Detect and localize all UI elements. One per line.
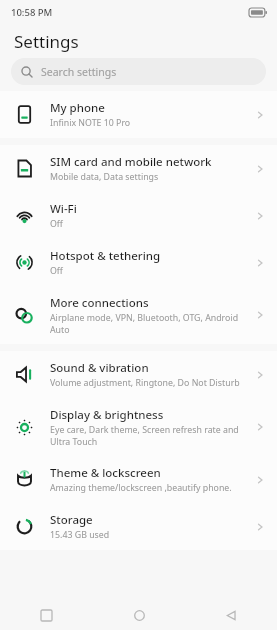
staticText: My phone <box>50 100 105 116</box>
staticText: Search settings <box>41 65 117 79</box>
button[interactable]: Wi-Fi <box>0 192 277 239</box>
button[interactable]: Display & brightness <box>0 398 277 456</box>
staticText: Sound & vibration <box>50 360 149 376</box>
staticText: Theme & lockscreen <box>50 465 161 481</box>
button[interactable]: Sound & vibration <box>0 351 277 398</box>
staticText: Hotspot & tethering <box>50 248 161 264</box>
staticText: More connections <box>50 295 149 311</box>
staticText: Settings <box>14 30 79 53</box>
staticText: Airplane mode, VPN, Bluetooth, OTG, Andr… <box>50 312 248 335</box>
staticText: Wi-Fi <box>50 201 77 217</box>
button[interactable]: Home <box>93 600 185 630</box>
button[interactable]: Hotspot & tethering <box>0 239 277 286</box>
button[interactable]: Theme & lockscreen <box>0 456 277 503</box>
button[interactable]: SIM card and mobile network <box>0 145 277 192</box>
button[interactable]: More connections <box>0 286 277 344</box>
staticText: Infinix NOTE 10 Pro <box>50 117 131 129</box>
staticText: Off <box>50 265 63 277</box>
button[interactable]: Recent apps <box>0 600 93 630</box>
staticText: Mobile data, Data settings <box>50 171 159 183</box>
staticText: 10:58 PM <box>11 6 53 19</box>
staticText: Off <box>50 218 63 230</box>
staticText: Volume adjustment, Ringtone, Do Not Dist… <box>50 377 240 389</box>
staticText: Storage <box>50 512 93 528</box>
button[interactable]: Storage <box>0 503 277 550</box>
staticText: Eye care, Dark theme, Screen refresh rat… <box>50 424 248 447</box>
staticText: 15.43 GB used <box>50 529 110 541</box>
staticText: Display & brightness <box>50 407 164 423</box>
staticText: SIM card and mobile network <box>50 154 212 170</box>
button[interactable]: Search settings <box>11 58 266 85</box>
button[interactable]: My phone <box>0 91 277 138</box>
staticText: Amazing theme/lockscreen ,beautify phone… <box>50 482 232 494</box>
button[interactable]: Back <box>185 600 277 630</box>
